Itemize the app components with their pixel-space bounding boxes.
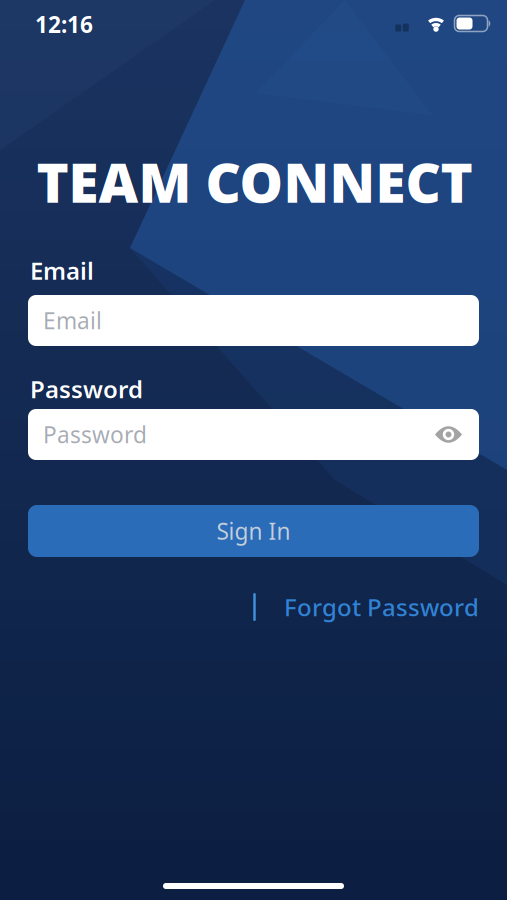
staticText: Password xyxy=(43,419,147,449)
button[interactable]: Forgot Password xyxy=(284,591,479,623)
staticText: 12:16 xyxy=(35,9,93,39)
button[interactable]: Email xyxy=(28,295,479,346)
staticText: TEAM CONNECT xyxy=(36,145,472,218)
staticText: Sign In xyxy=(216,516,290,546)
button[interactable]: Password xyxy=(28,409,479,460)
staticText: Forgot Password xyxy=(284,591,479,623)
button[interactable]: Sign In xyxy=(28,505,479,557)
staticText: Email xyxy=(30,255,94,286)
staticText: Email xyxy=(43,305,102,335)
staticText: Password xyxy=(30,373,143,405)
button[interactable]: Show password xyxy=(435,425,462,443)
